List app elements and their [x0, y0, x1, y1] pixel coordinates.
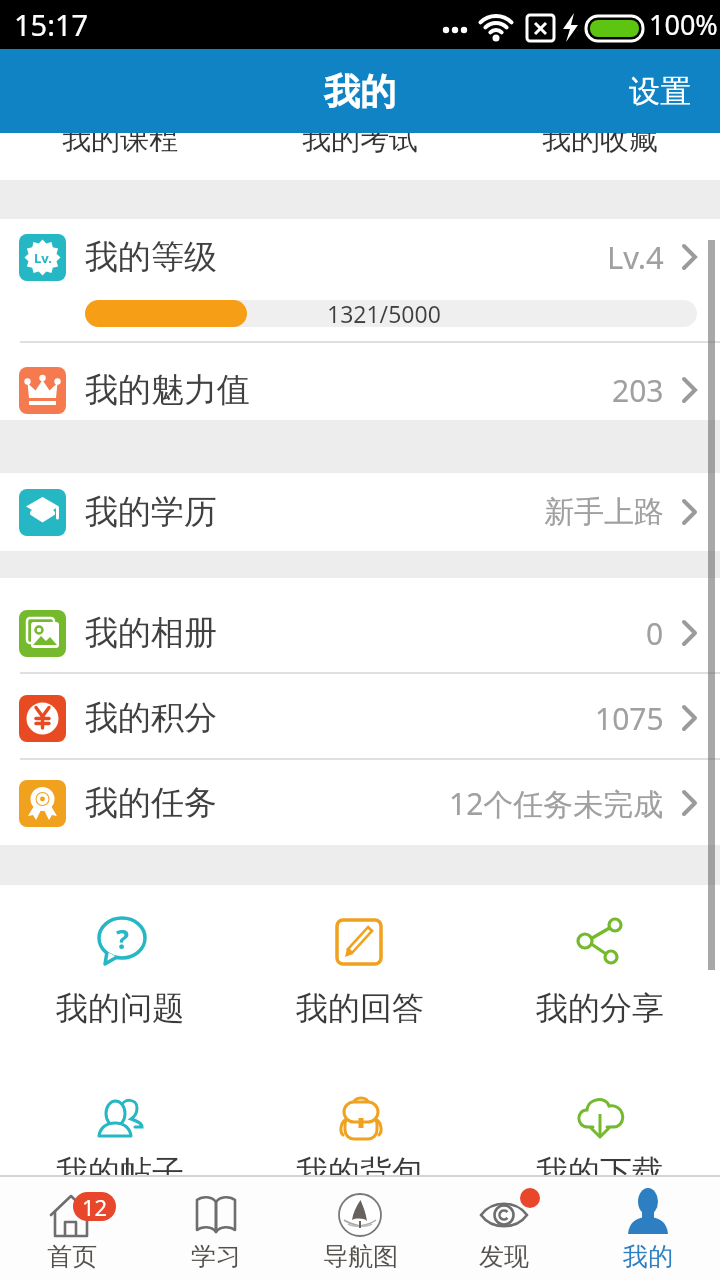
staticText: 我的	[623, 1241, 673, 1272]
staticText: 设置	[629, 72, 691, 111]
button[interactable]	[0, 473, 720, 551]
button[interactable]	[0, 219, 720, 341]
staticText: 我的下载	[536, 1152, 664, 1192]
staticText: ?	[116, 920, 129, 957]
staticText: 发现	[479, 1241, 529, 1272]
staticText: 我的回答	[296, 988, 424, 1028]
button[interactable]	[0, 578, 720, 672]
staticText: 1321/5000	[327, 298, 441, 329]
staticText: 新手上路	[544, 493, 664, 531]
button[interactable]	[240, 1060, 480, 1177]
button[interactable]	[240, 890, 480, 1050]
staticText: 12个任务未完成	[449, 783, 664, 824]
button[interactable]	[576, 1177, 720, 1280]
staticText: 我的帖子	[56, 1152, 184, 1192]
staticText: 我的收藏	[542, 121, 658, 158]
button[interactable]	[0, 890, 240, 1050]
staticText: 我的分享	[536, 988, 664, 1028]
staticText: 我的任务	[85, 782, 217, 824]
button[interactable]: 我的收藏	[480, 109, 720, 169]
button[interactable]: 我的考试	[240, 109, 480, 169]
button[interactable]	[0, 343, 720, 420]
staticText: 导航图	[323, 1241, 398, 1272]
button[interactable]	[480, 1060, 720, 1177]
staticText: 0	[646, 613, 664, 654]
staticText: 12	[82, 1192, 108, 1221]
staticText: 203	[612, 370, 664, 411]
staticText: 我的等级	[85, 236, 217, 278]
staticText: 我的学历	[85, 491, 217, 533]
staticText: 我的相册	[85, 612, 217, 654]
button[interactable]	[288, 1177, 432, 1280]
staticText: 1075	[595, 698, 664, 739]
button[interactable]	[0, 1060, 240, 1177]
staticText: Lv.4	[607, 236, 664, 278]
button[interactable]	[0, 1177, 144, 1280]
staticText: 首页	[47, 1241, 97, 1272]
button[interactable]	[0, 674, 720, 758]
staticText: 学习	[191, 1241, 241, 1272]
staticText: Lv.	[34, 249, 52, 267]
staticText: 15:17	[14, 5, 89, 44]
button[interactable]	[480, 890, 720, 1050]
button[interactable]: 设置	[600, 49, 720, 133]
button[interactable]	[144, 1177, 288, 1280]
staticText: 我的魅力值	[85, 369, 250, 411]
staticText: 我的问题	[56, 988, 184, 1028]
staticText: 我的	[324, 69, 396, 114]
staticText: 我的课程	[62, 121, 178, 158]
button[interactable]	[432, 1177, 576, 1280]
staticText: 我的背包	[296, 1152, 424, 1192]
button[interactable]: 我的课程	[0, 109, 240, 169]
staticText: 我的考试	[302, 121, 418, 158]
staticText: 100%	[649, 6, 718, 43]
staticText: 我的积分	[85, 697, 217, 739]
button[interactable]	[0, 760, 720, 845]
